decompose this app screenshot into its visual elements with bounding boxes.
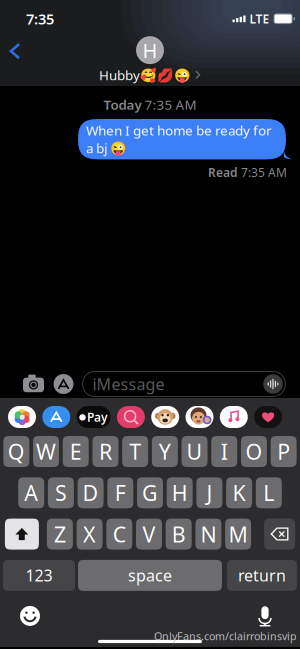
staticText: return [238, 565, 286, 586]
staticText: W [36, 437, 56, 466]
button[interactable]: G [137, 477, 163, 508]
button[interactable]: Animoji [151, 406, 179, 428]
button[interactable]: E [63, 436, 89, 467]
button[interactable] [264, 519, 295, 550]
button[interactable]: X [77, 519, 103, 550]
button[interactable]: App Store [42, 406, 70, 428]
button[interactable]: M [225, 519, 251, 550]
button[interactable]: Y [152, 436, 178, 467]
staticText: H [172, 479, 188, 507]
button[interactable]: C [106, 519, 132, 550]
staticText: Today [103, 96, 141, 113]
button[interactable]: H [99, 36, 201, 84]
button[interactable]: 123 [3, 560, 75, 591]
button[interactable]: I [211, 436, 237, 467]
button[interactable]: P [271, 436, 297, 467]
button[interactable]: Apple Pay [77, 406, 111, 428]
button[interactable]: Back [0, 36, 30, 66]
button[interactable]: N [195, 519, 221, 550]
staticText: B [172, 520, 186, 548]
staticText: space [128, 565, 172, 586]
button[interactable]: Camera [19, 371, 47, 397]
staticText: Hubby [99, 66, 140, 84]
button[interactable]: Emoji [17, 603, 43, 629]
button[interactable]: Q [3, 436, 29, 467]
button[interactable]: Memoji Stickers [185, 406, 213, 428]
staticText: K [233, 479, 246, 507]
staticText: 7:35 AM [241, 164, 287, 180]
button[interactable]: K [226, 477, 252, 508]
button[interactable]: F [107, 477, 133, 508]
staticText: H [142, 37, 157, 63]
staticText: X [83, 520, 96, 548]
staticText: OnlyFans.com/clairrobinsvip [154, 629, 297, 643]
staticText: iMessage [92, 373, 164, 395]
staticText: S [55, 479, 67, 507]
button[interactable]: return [227, 560, 297, 591]
button[interactable]: space [78, 560, 222, 591]
button[interactable]: H [167, 477, 193, 508]
staticText: Pay [87, 409, 108, 425]
staticText: D [83, 479, 99, 507]
staticText: LTE [249, 11, 269, 27]
staticText: U [186, 437, 202, 466]
button[interactable]: T [122, 436, 148, 467]
staticText: A [24, 479, 38, 507]
staticText: O [245, 437, 262, 466]
staticText: G [142, 479, 158, 507]
staticText: 7:35 [26, 9, 54, 28]
button[interactable]: V [136, 519, 162, 550]
button[interactable]: O [241, 436, 267, 467]
staticText: 7:35 AM [144, 96, 196, 113]
button[interactable]: Digital Touch [254, 406, 282, 428]
staticText: Z [54, 520, 66, 548]
button[interactable]: Photos [8, 406, 36, 428]
staticText: T [129, 437, 141, 466]
button[interactable]: S [48, 477, 74, 508]
staticText: N [200, 520, 216, 548]
staticText: R [99, 437, 112, 466]
button[interactable]: W [33, 436, 59, 467]
staticText: When I get home be ready for a bj 😜 [86, 121, 272, 157]
staticText: 123 [25, 565, 52, 586]
staticText: J [206, 479, 212, 507]
button[interactable]: J [196, 477, 222, 508]
button[interactable]: R [92, 436, 118, 467]
staticText: P [277, 437, 290, 466]
staticText: C [113, 520, 126, 548]
button[interactable]: U [181, 436, 207, 467]
staticText: E [70, 437, 82, 466]
button[interactable]: Images [117, 406, 145, 428]
staticText: V [142, 520, 155, 548]
button[interactable]: iMessage [82, 371, 285, 396]
button[interactable]: A [18, 477, 44, 508]
button[interactable]: L [256, 477, 282, 508]
button[interactable] [5, 519, 39, 550]
button[interactable]: Music [220, 406, 248, 428]
staticText: Read [208, 164, 238, 180]
button[interactable]: D [78, 477, 104, 508]
button[interactable]: Z [47, 519, 73, 550]
staticText: I [221, 437, 228, 466]
staticText: F [115, 479, 126, 507]
button[interactable]: Dictate [252, 603, 278, 629]
staticText: M [229, 520, 248, 548]
staticText: Q [8, 437, 25, 466]
staticText: Y [159, 437, 171, 466]
staticText: 🥰💋😜 [140, 67, 191, 83]
button[interactable]: Apps [50, 371, 76, 397]
staticText: L [263, 479, 274, 507]
button[interactable]: B [166, 519, 192, 550]
